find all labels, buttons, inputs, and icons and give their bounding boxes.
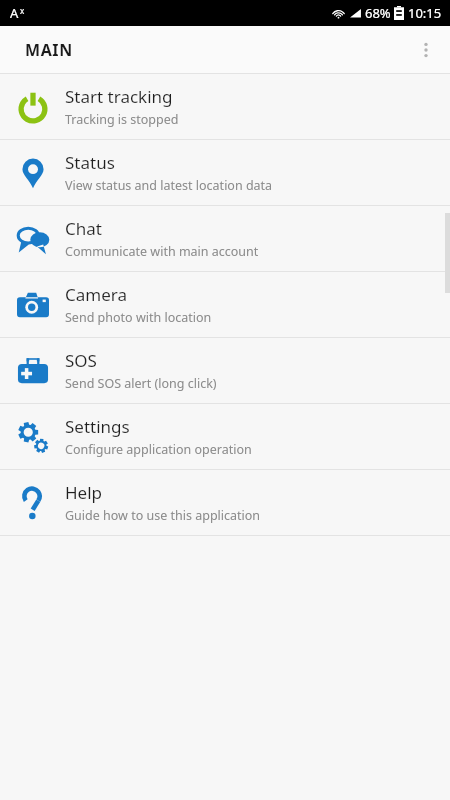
staticText: 10:15: [408, 4, 442, 22]
staticText: Configure application operation: [65, 441, 252, 458]
staticText: Tracking is stopped: [65, 111, 179, 128]
button[interactable]: Help: [0, 470, 450, 536]
staticText: Start tracking: [65, 85, 173, 108]
staticText: Communicate with main account: [65, 243, 259, 260]
staticText: SOS: [65, 349, 97, 372]
button[interactable]: Camera: [0, 272, 450, 338]
button[interactable]: Status: [0, 140, 450, 206]
button[interactable]: Chat: [0, 206, 450, 272]
button[interactable]: More options: [402, 26, 450, 73]
staticText: Status: [65, 151, 115, 174]
button[interactable]: SOS: [0, 338, 450, 404]
staticText: Chat: [65, 217, 102, 240]
staticText: MAIN: [25, 39, 73, 61]
button[interactable]: Settings: [0, 404, 450, 470]
staticText: Guide how to use this application: [65, 507, 261, 524]
staticText: Help: [65, 481, 103, 504]
staticText: Send SOS alert (long click): [65, 375, 217, 392]
staticText: Send photo with location: [65, 309, 212, 326]
staticText: Camera: [65, 283, 127, 306]
staticText: 68%: [365, 4, 391, 22]
staticText: x: [20, 5, 25, 16]
staticText: Settings: [65, 415, 130, 438]
staticText: A: [10, 4, 19, 22]
button[interactable]: Start tracking: [0, 74, 450, 140]
staticText: View status and latest location data: [65, 177, 273, 194]
